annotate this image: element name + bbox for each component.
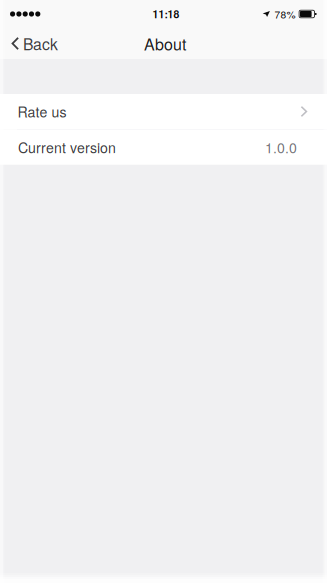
button[interactable]: Rate us (0, 94, 327, 129)
staticText: Current version (18, 137, 116, 157)
button[interactable]: Back (0, 28, 70, 59)
staticText: 11:18 (152, 7, 179, 21)
staticText: 78% (274, 7, 295, 21)
staticText: 1.0.0 (265, 137, 297, 157)
staticText: Rate us (17, 101, 66, 122)
staticText: About (144, 32, 186, 55)
staticText: Back (23, 32, 58, 55)
